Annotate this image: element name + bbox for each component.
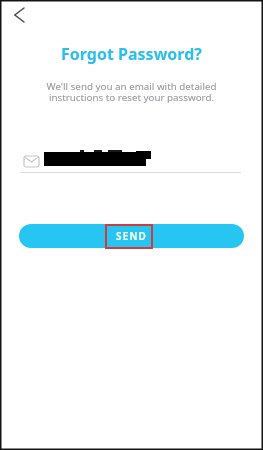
button[interactable]	[6, 2, 32, 28]
button[interactable]	[20, 150, 243, 166]
staticText: We'll send you an email with detailed in…	[0, 80, 263, 104]
button[interactable]: SEND	[19, 224, 244, 248]
staticText: Forgot Password?	[0, 43, 263, 65]
staticText: SEND	[116, 229, 148, 243]
